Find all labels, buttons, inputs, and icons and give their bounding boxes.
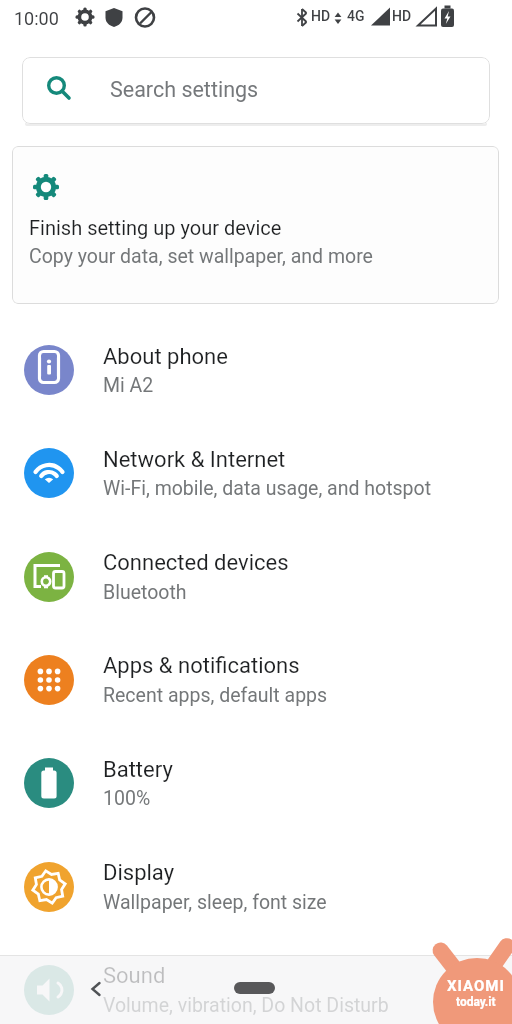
- staticText: 100%: [103, 787, 151, 810]
- staticText: 10:00: [14, 8, 59, 29]
- button[interactable]: [0, 525, 512, 628]
- staticText: Finish setting up your device: [29, 216, 282, 239]
- staticText: About phone: [103, 344, 228, 370]
- staticText: XIAOMI: [447, 977, 505, 995]
- button[interactable]: [22, 57, 490, 124]
- button[interactable]: [234, 982, 275, 994]
- staticText: Wallpaper, sleep, font size: [103, 891, 327, 914]
- staticText: Mi A2: [103, 374, 154, 397]
- staticText: Volume, vibration, Do Not Disturb: [103, 994, 389, 1017]
- staticText: Copy your data, set wallpaper, and more: [29, 245, 373, 268]
- staticText: Sound: [103, 963, 166, 989]
- staticText: Battery: [103, 757, 173, 783]
- staticText: Search settings: [110, 77, 259, 102]
- staticText: Wi-Fi, mobile, data usage, and hotspot: [103, 477, 432, 500]
- button[interactable]: [0, 835, 512, 938]
- staticText: today.it: [456, 995, 496, 1009]
- button[interactable]: [12, 146, 499, 304]
- staticText: Connected devices: [103, 550, 289, 576]
- staticText: HD: [392, 8, 412, 24]
- button[interactable]: [0, 628, 512, 731]
- button[interactable]: [0, 422, 512, 525]
- button[interactable]: [0, 318, 512, 421]
- staticText: Bluetooth: [103, 581, 187, 604]
- button[interactable]: [0, 938, 512, 1024]
- staticText: HD: [311, 8, 331, 24]
- staticText: Display: [103, 860, 175, 886]
- staticText: 4G: [347, 8, 365, 24]
- button[interactable]: [0, 732, 512, 835]
- staticText: Apps & notifications: [103, 653, 300, 679]
- staticText: Network & Internet: [103, 447, 286, 473]
- button[interactable]: [88, 980, 104, 998]
- staticText: Recent apps, default apps: [103, 684, 328, 707]
